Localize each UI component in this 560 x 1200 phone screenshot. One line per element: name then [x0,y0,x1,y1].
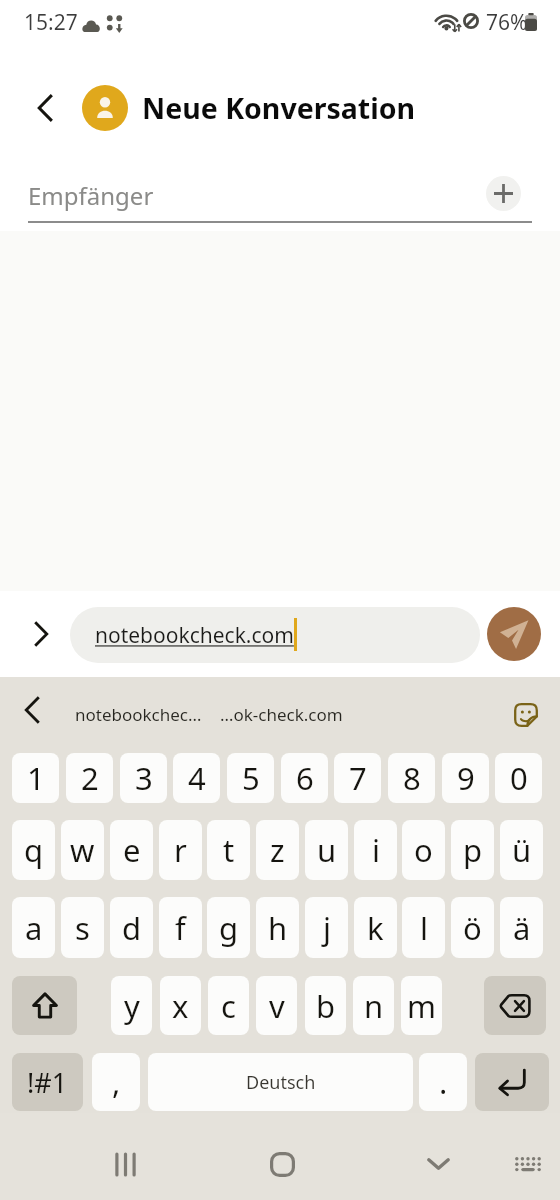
staticText: !#1 [27,1064,68,1101]
button[interactable]: j [305,897,348,958]
staticText: m [407,985,436,1027]
staticText: l [420,907,428,949]
button[interactable]: 9 [442,753,489,803]
staticText: b [316,985,336,1027]
button[interactable]: k [354,897,397,958]
staticText: h [268,907,288,949]
button[interactable]: Umschalt [12,976,77,1035]
button[interactable]: b [305,976,346,1035]
button[interactable]: r [159,820,202,880]
button[interactable]: Kontakt [82,85,128,131]
button[interactable]: , [92,1053,140,1111]
staticText: 6 [296,757,314,799]
button[interactable]: v [256,976,297,1035]
button[interactable]: Senden [487,607,541,661]
button[interactable]: Zurück [23,86,67,130]
staticText: 15:27 [24,8,78,37]
button[interactable]: notebookcheck.com [70,607,480,663]
button[interactable]: Eingabe [475,1053,549,1111]
staticText: y [124,985,140,1027]
button[interactable]: Vorschläge zurück [11,689,53,731]
button[interactable]: Weitere Optionen [19,612,63,656]
staticText: notebookcheck.com [95,621,294,650]
staticText: p [463,829,483,871]
staticText: s [75,907,90,949]
staticText: z [270,829,285,871]
button[interactable]: Tastatur wechseln [504,1140,552,1188]
staticText: c [221,985,236,1027]
button[interactable]: notebookchec… [70,677,207,752]
staticText: a [25,907,43,949]
staticText: ö [463,907,482,949]
button[interactable]: Löschen [484,976,546,1035]
button[interactable]: . [419,1053,467,1111]
staticText: w [70,829,95,871]
button[interactable]: 2 [66,753,113,803]
button[interactable]: z [256,820,299,880]
staticText: k [367,907,384,949]
button[interactable]: Tastatur ausblenden [414,1140,462,1188]
button[interactable]: 6 [281,753,328,803]
staticText: r [174,829,187,871]
button[interactable]: o [402,820,445,880]
button[interactable]: 3 [120,753,167,803]
staticText: Neue Konversation [142,89,416,128]
button[interactable]: !#1 [12,1053,83,1111]
button[interactable]: m [401,976,442,1035]
button[interactable]: 8 [388,753,435,803]
staticText: i [372,829,380,871]
button[interactable]: Empfänger hinzufügen [486,176,521,211]
staticText: ü [512,829,532,871]
button[interactable]: Leertaste Deutsch [148,1053,413,1111]
button[interactable]: 4 [173,753,220,803]
button[interactable]: Sticker [505,694,547,736]
staticText: f [175,907,186,949]
staticText: t [223,829,235,871]
button[interactable]: e [110,820,153,880]
button[interactable]: 0 [495,753,542,803]
button[interactable]: u [305,820,348,880]
staticText: notebookchec… [75,703,202,726]
button[interactable]: c [208,976,249,1035]
button[interactable]: x [160,976,201,1035]
button[interactable]: w [61,820,104,880]
button[interactable]: …ok-check.com [216,677,346,752]
staticText: 9 [457,757,475,799]
button[interactable]: y [111,976,152,1035]
button[interactable]: ö [451,897,494,958]
staticText: d [122,907,142,949]
staticText: j [323,907,331,949]
button[interactable]: Letzte Apps [101,1140,149,1188]
staticText: g [219,907,239,949]
staticText: q [24,829,44,871]
button[interactable]: l [402,897,445,958]
staticText: n [364,985,384,1027]
button[interactable]: s [61,897,104,958]
staticText: . [439,1061,448,1103]
button[interactable]: f [159,897,202,958]
button[interactable]: 7 [334,753,381,803]
staticText: 76% [486,8,528,37]
button[interactable]: n [353,976,394,1035]
button[interactable]: q [12,820,55,880]
button[interactable]: g [207,897,250,958]
staticText: x [172,985,189,1027]
staticText: 1 [27,757,45,799]
staticText: ä [513,907,531,949]
button[interactable]: p [451,820,494,880]
button[interactable]: ä [500,897,543,958]
staticText: Empfänger [28,179,154,212]
staticText: 7 [349,757,367,799]
button[interactable]: h [256,897,299,958]
button[interactable]: i [354,820,397,880]
button[interactable]: a [12,897,55,958]
staticText: v [269,985,285,1027]
button[interactable]: ü [500,820,543,880]
staticText: u [317,829,337,871]
button[interactable]: 1 [12,753,59,803]
button[interactable]: Startseite [258,1140,306,1188]
staticText: 8 [403,757,421,799]
button[interactable]: t [207,820,250,880]
button[interactable]: d [110,897,153,958]
button[interactable]: 5 [227,753,274,803]
